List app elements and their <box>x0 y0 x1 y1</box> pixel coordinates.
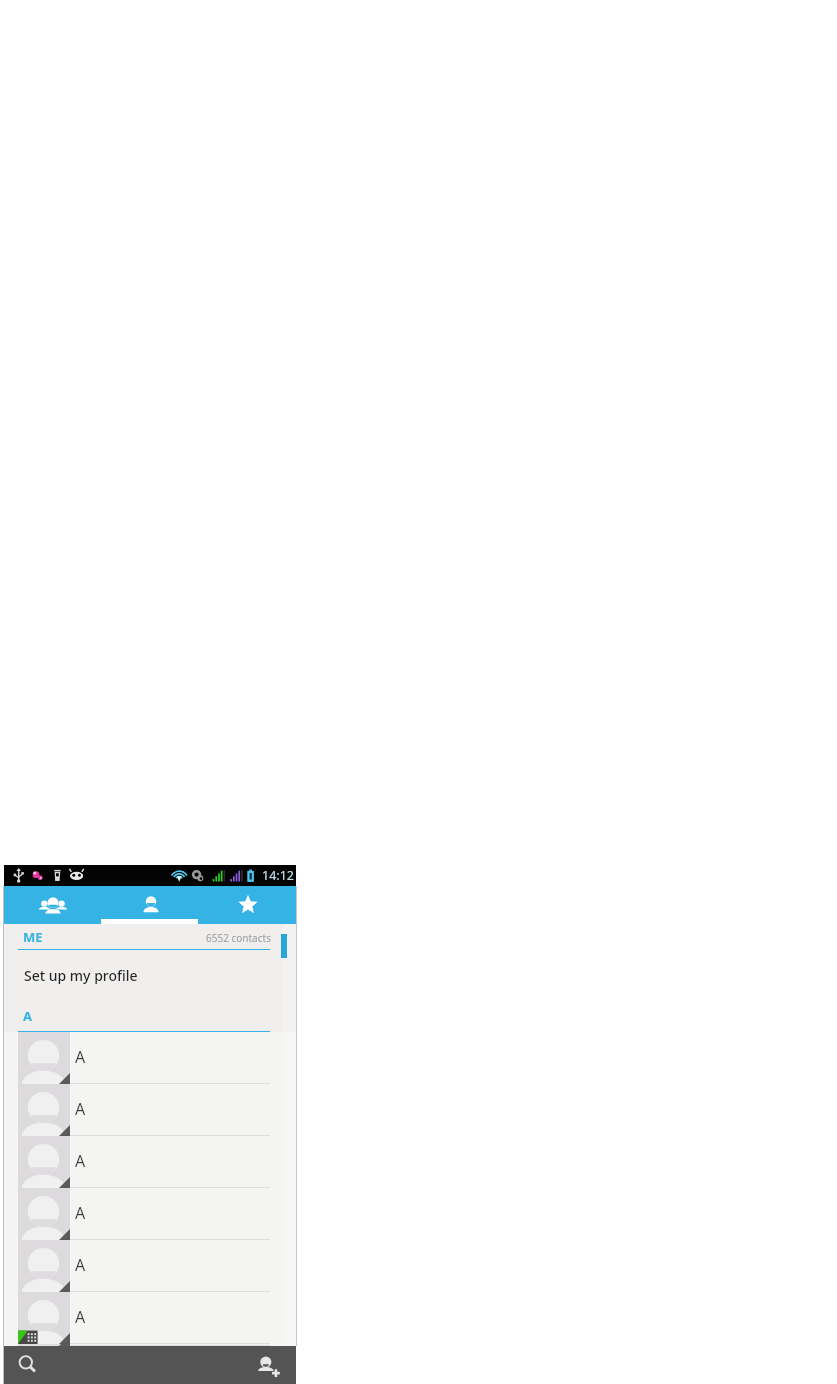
button[interactable]: ME <box>4 924 296 950</box>
button[interactable]: A <box>4 1032 296 1084</box>
button[interactable]: A <box>4 1292 296 1344</box>
button[interactable]: Search <box>4 1346 52 1384</box>
button[interactable]: A <box>4 1240 296 1292</box>
staticText: A <box>75 1306 86 1328</box>
button[interactable]: A <box>4 1344 296 1346</box>
button[interactable]: Favorites <box>199 886 296 924</box>
staticText: A <box>75 1254 86 1276</box>
button[interactable]: A <box>4 1136 296 1188</box>
staticText: A <box>75 1150 86 1172</box>
staticText: Set up my profile <box>24 966 138 985</box>
button[interactable]: A <box>4 1084 296 1136</box>
staticText: A <box>23 1007 32 1025</box>
button[interactable]: Groups <box>4 886 102 924</box>
button[interactable]: Set up my profile <box>4 950 296 1001</box>
button[interactable]: Contacts <box>102 886 199 924</box>
staticText: ME <box>23 928 43 946</box>
staticText: 6552 contacts <box>206 931 271 945</box>
staticText: A <box>75 1202 86 1224</box>
staticText: 14:12 <box>262 867 294 884</box>
button[interactable]: A <box>4 1188 296 1240</box>
staticText: A <box>75 1098 86 1120</box>
staticText: A <box>75 1046 86 1068</box>
button[interactable]: Add contact <box>240 1346 296 1384</box>
